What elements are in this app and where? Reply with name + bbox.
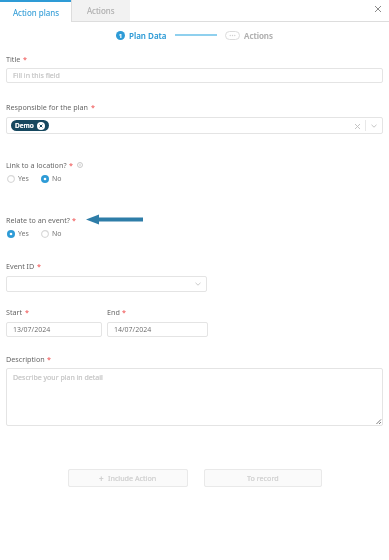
staticText: Actions [244, 30, 273, 41]
button[interactable]: Fill in this field [6, 68, 383, 83]
staticText: Title [6, 54, 21, 64]
button[interactable]: Event ID dropdown [6, 276, 207, 292]
button[interactable]: 13/07/2024 [6, 322, 102, 337]
button[interactable]: Yes [6, 228, 30, 240]
button[interactable]: 1 [116, 30, 167, 41]
button[interactable]: Open dropdown [370, 122, 378, 130]
staticText: Demo [15, 121, 34, 130]
staticText: * [122, 307, 126, 317]
button[interactable]: + [68, 469, 188, 487]
button[interactable]: Close [372, 3, 384, 15]
staticText: Start [6, 307, 23, 317]
staticText: * [72, 215, 76, 225]
staticText: Describe your plan in detail [13, 373, 103, 383]
staticText: Yes [18, 229, 29, 239]
staticText: 1 [119, 32, 123, 39]
button[interactable]: Clear [353, 122, 361, 130]
staticText: Include Action [108, 473, 157, 483]
button[interactable]: Action plans [0, 0, 72, 22]
staticText: End [107, 307, 120, 317]
button[interactable]: Demo [15, 120, 45, 131]
button[interactable]: Demo [6, 117, 383, 134]
button[interactable]: No [40, 228, 63, 240]
staticText: * [47, 354, 51, 364]
staticText: * [37, 261, 41, 271]
staticText: Relate to an event? [6, 215, 70, 225]
staticText: * [69, 160, 73, 170]
button[interactable]: No [40, 173, 63, 185]
staticText: Description [6, 354, 45, 364]
staticText: Actions [87, 5, 115, 16]
staticText: 13/07/2024 [13, 325, 51, 335]
button[interactable]: Actions [72, 0, 130, 21]
button[interactable]: Describe your plan in detail [6, 368, 383, 426]
button[interactable]: Yes [6, 173, 30, 185]
staticText: Action plans [13, 7, 60, 18]
staticText: To record [247, 473, 279, 483]
staticText: Link to a location? [6, 160, 67, 170]
staticText: Plan Data [129, 30, 167, 41]
staticText: No [52, 229, 62, 239]
staticText: Yes [18, 174, 29, 184]
staticText: * [25, 307, 29, 317]
staticText: No [52, 174, 62, 184]
staticText: Event ID [6, 261, 35, 271]
staticText: 14/07/2024 [114, 325, 152, 335]
staticText: * [91, 102, 95, 112]
button[interactable]: Actions [225, 30, 273, 41]
button[interactable]: To record [204, 469, 322, 487]
button[interactable]: 14/07/2024 [107, 322, 208, 337]
staticText: Responsible for the plan [6, 102, 89, 112]
staticText: Fill in this field [13, 71, 60, 81]
staticText: * [23, 54, 27, 64]
staticText: + [99, 473, 104, 484]
